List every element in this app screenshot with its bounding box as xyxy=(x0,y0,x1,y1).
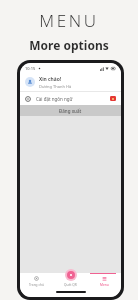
button[interactable]: Menu xyxy=(87,273,121,289)
staticText: 10:15 xyxy=(25,66,36,71)
staticText: Cài đặt ngôn ngữ xyxy=(36,96,73,102)
button[interactable]: Đăng xuất xyxy=(20,105,121,116)
staticText: More options xyxy=(29,37,109,53)
other: Settings xyxy=(25,96,31,102)
button[interactable]: Home xyxy=(20,273,53,289)
staticText: Dương Thanh Hà xyxy=(39,84,72,89)
staticText: Xin chào! xyxy=(39,76,62,83)
button[interactable]: Quét QR xyxy=(65,269,77,281)
staticText: Menu xyxy=(100,283,109,287)
button[interactable]: Settings xyxy=(20,92,121,105)
button[interactable]: Quét QR xyxy=(53,273,87,289)
button[interactable]: Language flag xyxy=(110,96,116,101)
staticText: Trang chủ xyxy=(29,283,44,287)
staticText: MENU xyxy=(39,9,99,32)
staticText: Quét QR xyxy=(64,283,77,287)
staticText: Đăng xuất xyxy=(59,108,82,114)
button[interactable]: Xin chào! xyxy=(20,73,121,91)
